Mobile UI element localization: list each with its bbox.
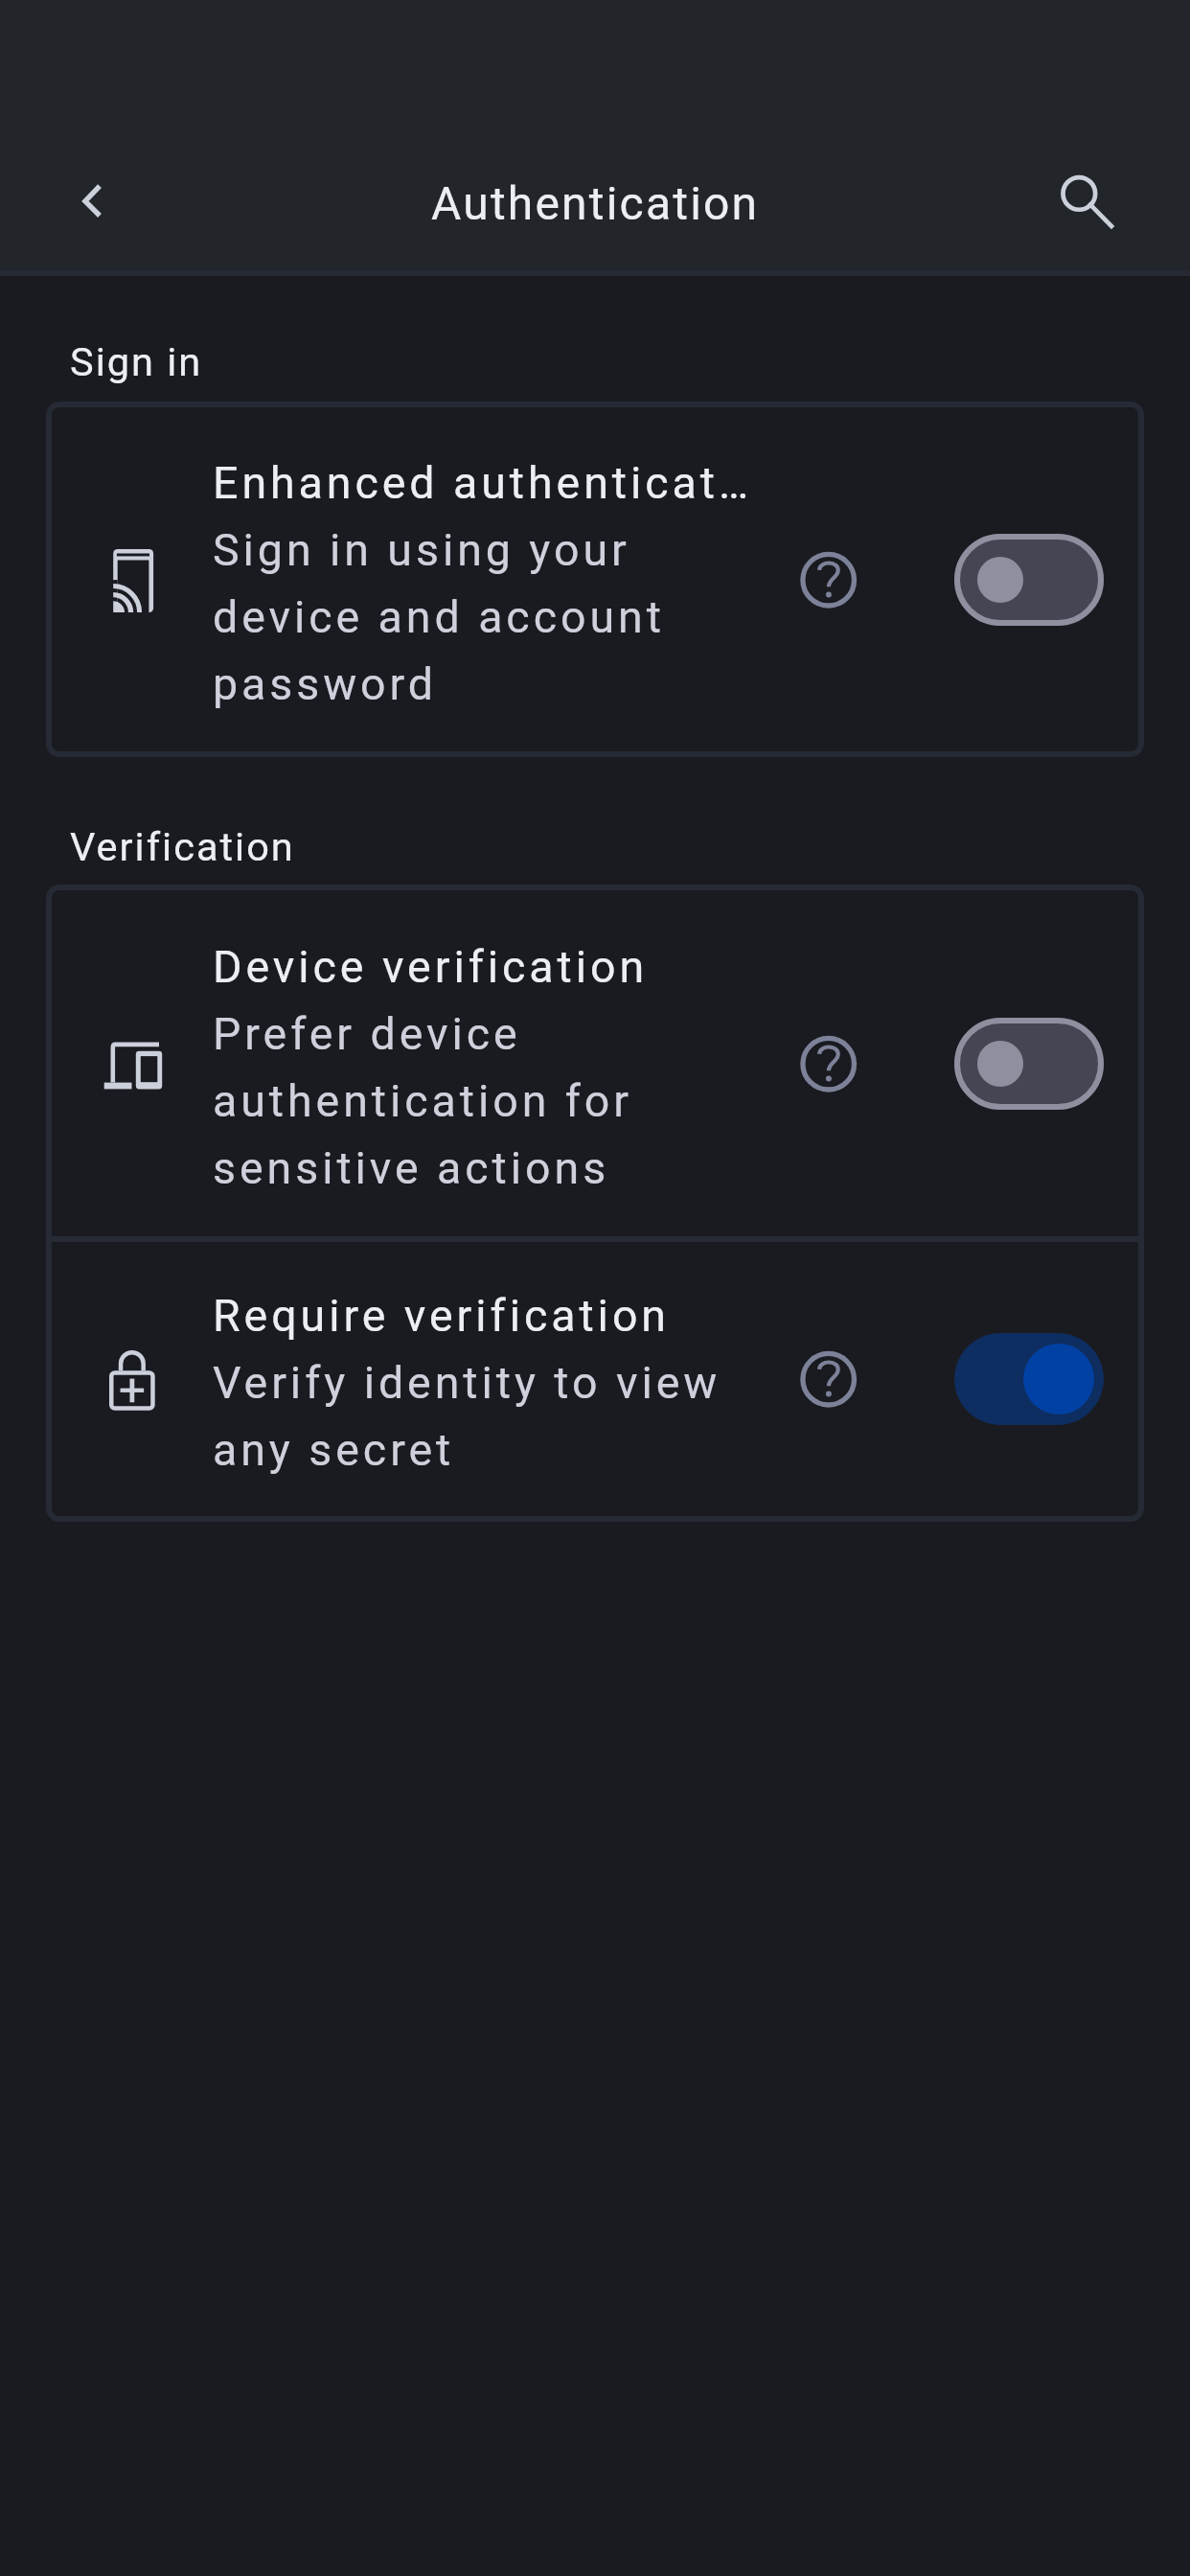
button[interactable]: Enhanced authenticat… xyxy=(52,407,1138,751)
staticText: Enhanced authenticat… xyxy=(213,446,745,513)
staticText: Sign in using your xyxy=(213,513,630,580)
staticText: Verify identity to view xyxy=(213,1345,721,1413)
staticText: Authentication xyxy=(431,176,760,230)
button[interactable]: Require verification help xyxy=(793,1344,864,1414)
staticText: Device verification xyxy=(213,930,649,997)
button[interactable]: Enabled xyxy=(954,1333,1104,1425)
button[interactable]: Require verification xyxy=(52,1242,1138,1516)
button[interactable]: Device verification xyxy=(52,890,1138,1236)
staticText: password xyxy=(213,647,438,714)
staticText: Require verification xyxy=(213,1278,670,1345)
button[interactable]: Disabled xyxy=(954,1018,1104,1110)
button[interactable]: Disabled xyxy=(954,534,1104,626)
staticText: authentication for xyxy=(213,1064,633,1131)
button[interactable]: Device verification help xyxy=(793,1028,864,1099)
button[interactable]: Enhanced authentication help xyxy=(793,544,864,615)
staticText: Sign in xyxy=(70,338,203,385)
staticText: device and account xyxy=(213,580,665,647)
staticText: Prefer device xyxy=(213,997,521,1064)
button[interactable]: Search xyxy=(1024,139,1133,248)
staticText: any secret xyxy=(213,1413,455,1480)
button[interactable]: Back xyxy=(45,145,154,254)
staticText: sensitive actions xyxy=(213,1131,610,1198)
staticText: Verification xyxy=(70,823,295,870)
